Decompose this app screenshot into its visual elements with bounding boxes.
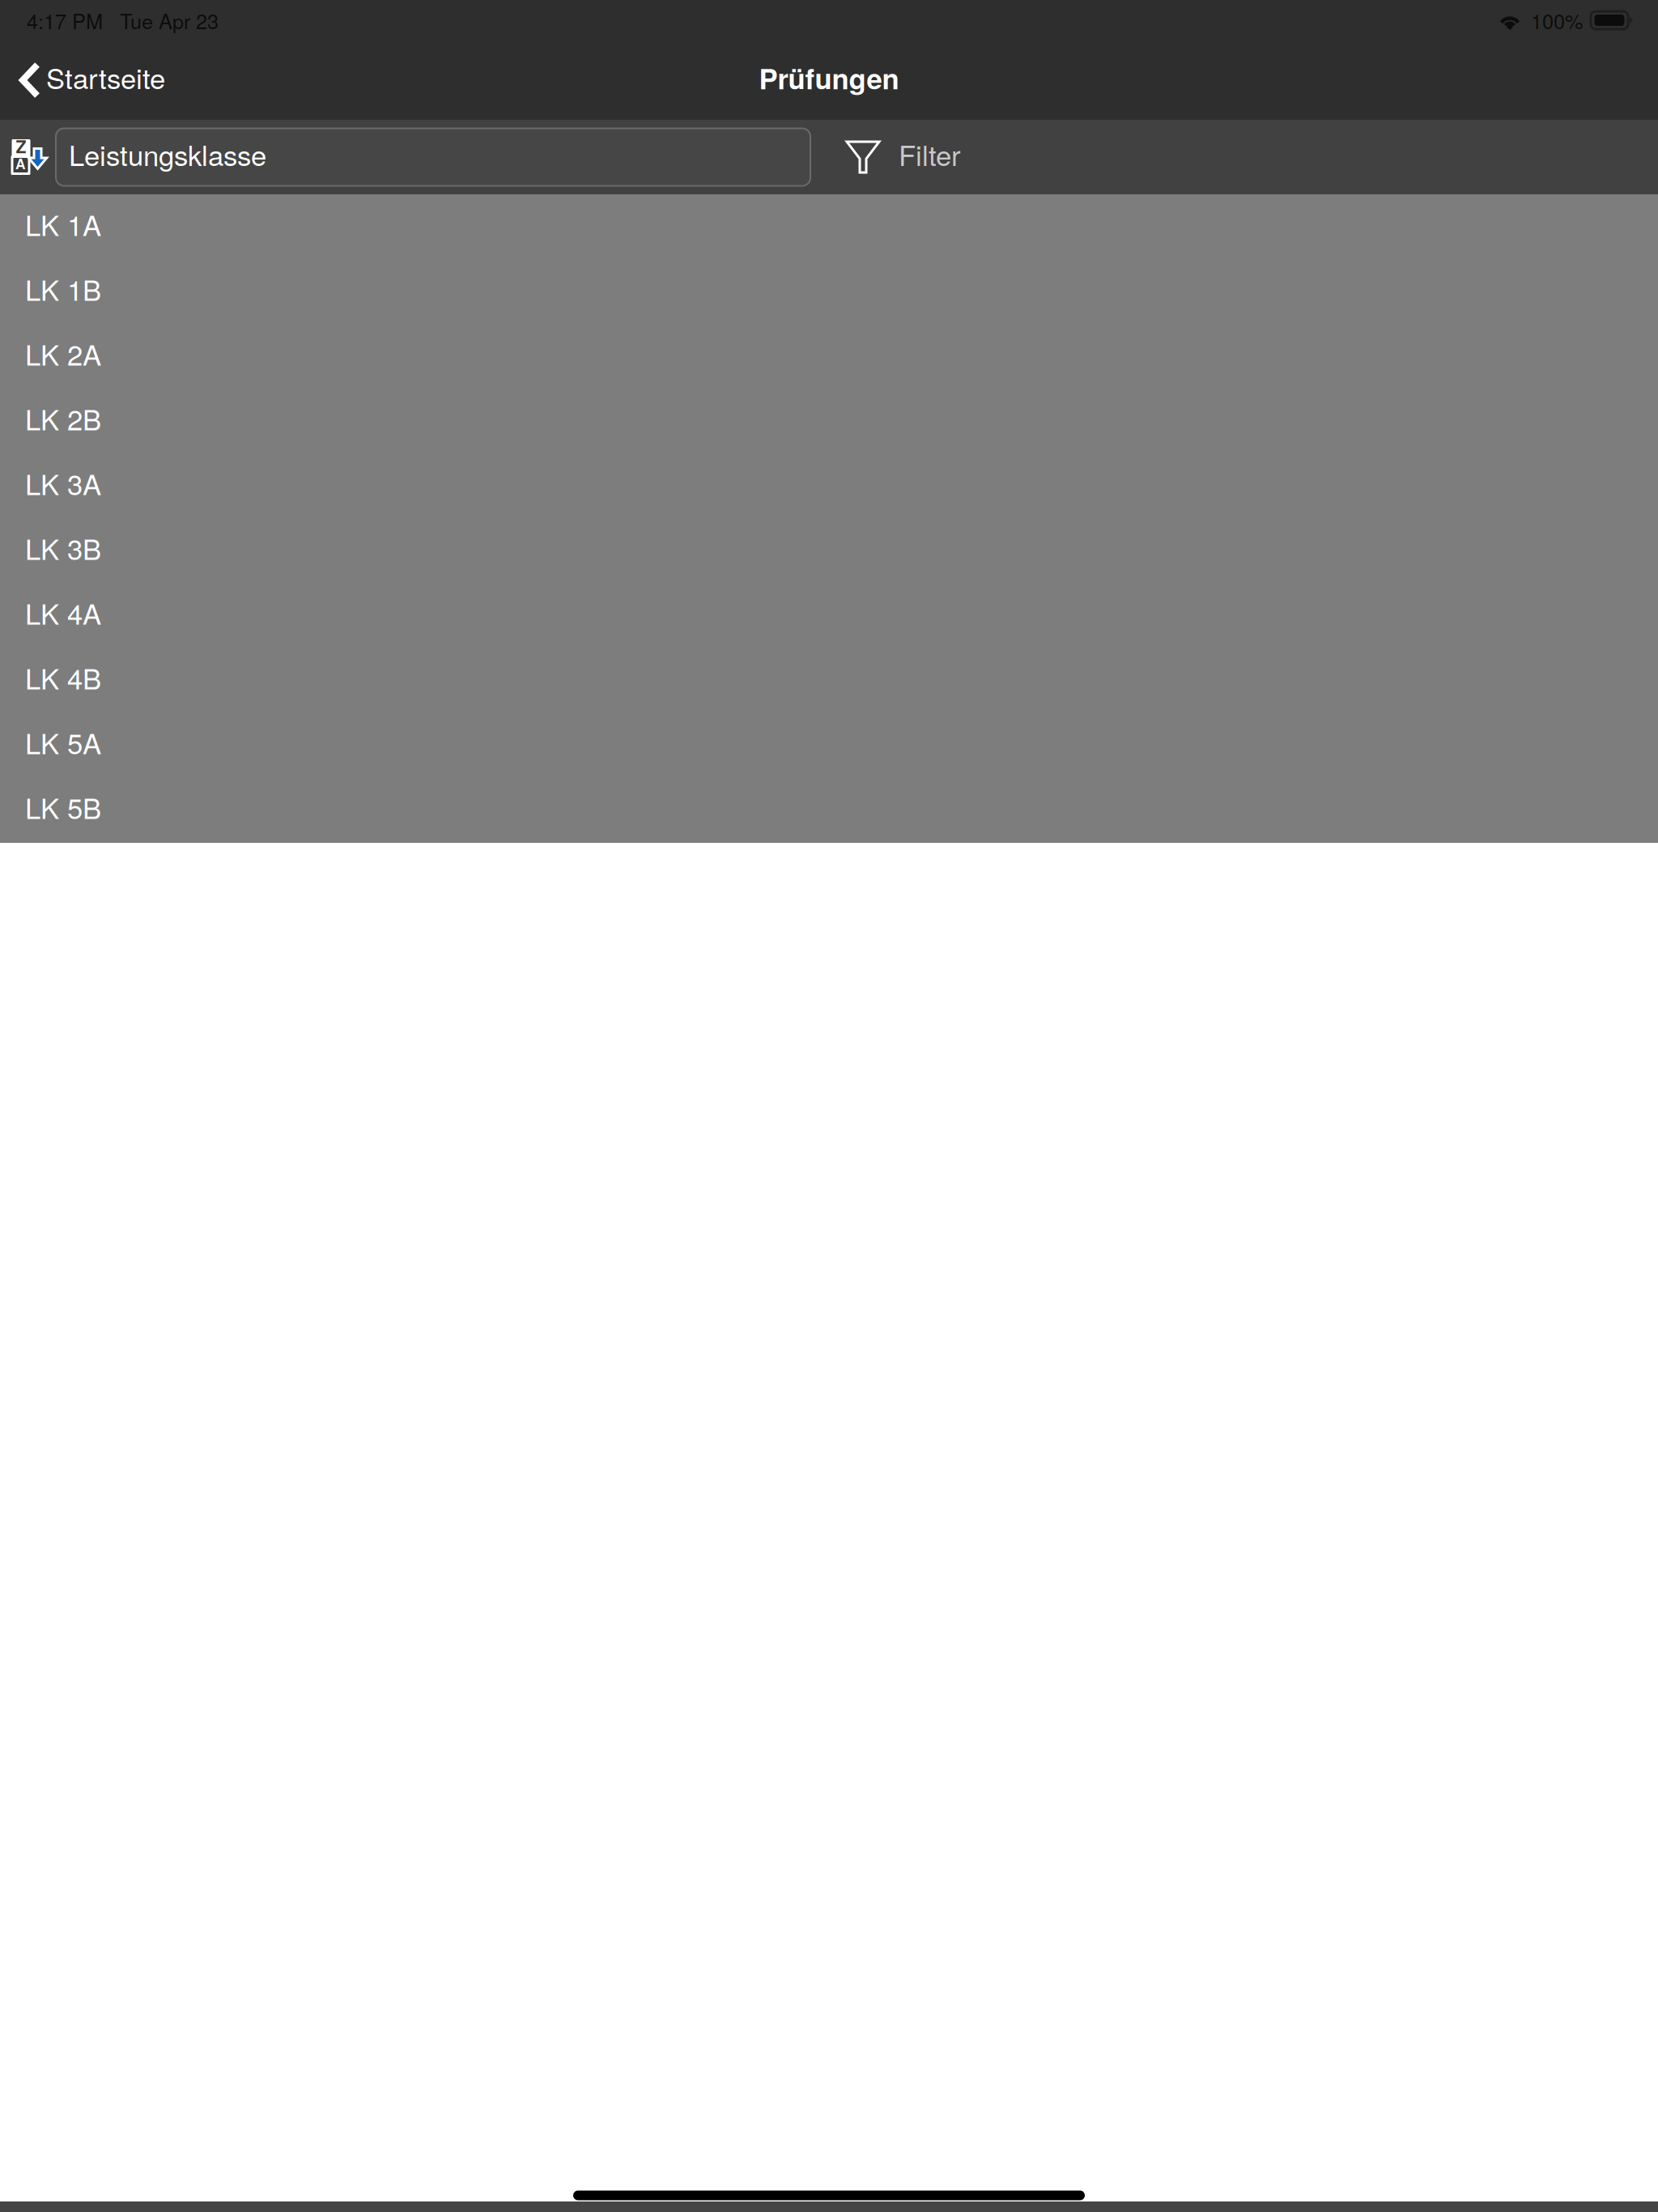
staticText: LK 2B bbox=[25, 398, 101, 438]
button[interactable]: LK 5B bbox=[0, 778, 1658, 842]
button[interactable]: Startseite bbox=[0, 40, 181, 120]
staticText: LK 4B bbox=[25, 657, 101, 697]
button[interactable]: LK 1A bbox=[0, 195, 1658, 259]
staticText: A bbox=[15, 154, 26, 174]
staticText: LK 4A bbox=[25, 592, 101, 633]
staticText: LK 5B bbox=[25, 787, 101, 827]
button[interactable]: LK 4B bbox=[0, 648, 1658, 713]
staticText: Startseite bbox=[46, 57, 165, 97]
button[interactable]: LK 2B bbox=[0, 389, 1658, 454]
staticText: LK 3B bbox=[25, 528, 101, 568]
button[interactable]: LK 2A bbox=[0, 324, 1658, 389]
button[interactable]: Leistungsklasse bbox=[56, 128, 810, 186]
button[interactable]: LK 5A bbox=[0, 713, 1658, 778]
button[interactable]: LK 3B bbox=[0, 519, 1658, 583]
staticText: Filter bbox=[899, 134, 961, 174]
staticText: 4:17 PM bbox=[27, 6, 103, 35]
button[interactable]: LK 4A bbox=[0, 583, 1658, 648]
staticText: Z bbox=[16, 134, 26, 158]
staticText: 100% bbox=[1531, 6, 1584, 35]
staticText: LK 2A bbox=[25, 333, 101, 373]
button[interactable]: LK 3A bbox=[0, 454, 1658, 519]
staticText: Tue Apr 23 bbox=[120, 6, 219, 35]
button[interactable]: LK 1B bbox=[0, 259, 1658, 324]
staticText: LK 3A bbox=[25, 463, 101, 503]
staticText: Leistungsklasse bbox=[69, 134, 266, 174]
staticText: LK 5A bbox=[25, 722, 101, 762]
staticText: LK 1B bbox=[25, 269, 101, 309]
button[interactable]: Filter bbox=[810, 120, 985, 194]
staticText: Prüfungen bbox=[759, 58, 899, 98]
staticText: LK 1A bbox=[25, 204, 101, 244]
button[interactable]: Sortierreihenfolge bbox=[0, 120, 56, 194]
